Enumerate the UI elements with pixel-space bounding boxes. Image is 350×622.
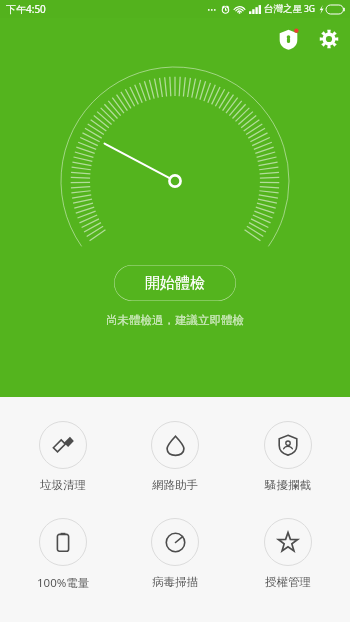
button[interactable]: 網路助手 <box>125 419 225 494</box>
button[interactable]: 垃圾清理 <box>13 419 113 494</box>
staticText: 3G <box>304 3 316 15</box>
button[interactable]: 病毒掃描 <box>125 516 225 591</box>
button[interactable]: Settings <box>308 18 350 60</box>
button[interactable]: 騷擾攔截 <box>238 419 338 494</box>
staticText: 下午4:50 <box>6 2 46 16</box>
button[interactable]: Security alerts <box>268 19 308 59</box>
staticText: 垃圾清理 <box>40 478 86 492</box>
staticText: 台灣之星 <box>264 3 302 15</box>
staticText: 授權管理 <box>265 575 311 589</box>
staticText: 騷擾攔截 <box>265 478 311 492</box>
staticText: 病毒掃描 <box>152 575 198 589</box>
staticText: 網路助手 <box>152 478 198 492</box>
staticText: 開始體檢 <box>145 274 205 293</box>
button[interactable]: 100%電量 <box>13 516 113 593</box>
staticText: 尚未體檢過，建議立即體檢 <box>106 313 244 327</box>
staticText: 100%電量 <box>37 575 90 591</box>
button[interactable]: 開始體檢 <box>114 265 236 301</box>
button[interactable]: 授權管理 <box>238 516 338 591</box>
